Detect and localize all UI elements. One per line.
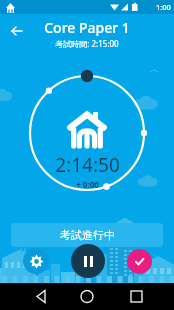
staticText: 考試時間: 2:15:00 bbox=[55, 38, 119, 49]
button[interactable]: Finish bbox=[127, 249, 152, 274]
button[interactable]: Settings bbox=[23, 248, 49, 274]
staticText: + 0:00 bbox=[76, 179, 99, 190]
staticText: 考試進行中 bbox=[60, 228, 115, 242]
button[interactable]: Pause bbox=[71, 244, 105, 278]
button[interactable]: Back bbox=[4, 18, 30, 44]
button[interactable]: 考試進行中 bbox=[11, 223, 163, 247]
staticText: 1:00 bbox=[156, 2, 171, 12]
staticText: Core Paper 1 bbox=[44, 18, 130, 37]
staticText: 2:14:50 bbox=[55, 152, 120, 178]
